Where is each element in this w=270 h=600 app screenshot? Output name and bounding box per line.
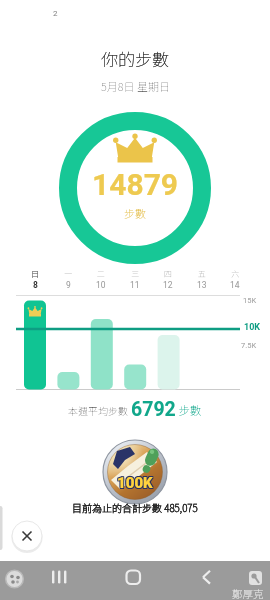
- staticText: 你的步數: [101, 46, 169, 71]
- staticText: 8: [33, 280, 38, 290]
- staticText: 步數: [124, 205, 146, 221]
- button[interactable]: [12, 521, 42, 551]
- staticText: 100K: [117, 473, 153, 491]
- staticText: 五: [198, 268, 206, 280]
- staticText: 11: [130, 280, 140, 290]
- staticText: 13: [197, 280, 207, 290]
- staticText: 日: [31, 268, 39, 280]
- staticText: 你的步數: [101, 46, 169, 71]
- staticText: 14: [230, 280, 240, 290]
- staticText: 5月8日 星期日: [101, 78, 170, 94]
- staticText: 鄭厚克: [232, 586, 264, 600]
- staticText: 10K: [244, 322, 261, 333]
- staticText: 100K: [116, 475, 152, 493]
- staticText: 9: [66, 280, 71, 290]
- staticText: 一: [64, 268, 72, 280]
- staticText: 目前為止的合計步數 485,075: [72, 500, 198, 514]
- staticText: 100K: [117, 475, 153, 493]
- staticText: 100K: [116, 473, 152, 491]
- staticText: 日: [31, 268, 39, 280]
- button[interactable]: [0, 560, 67, 600]
- staticText: 7.5K: [241, 341, 257, 350]
- button[interactable]: [67, 560, 134, 600]
- staticText: 步數: [176, 402, 202, 419]
- staticText: 100K: [117, 474, 153, 492]
- staticText: 100K: [118, 475, 154, 493]
- staticText: 本週平均步數: [68, 403, 131, 417]
- staticText: 三: [131, 268, 139, 280]
- staticText: 二: [97, 268, 105, 280]
- staticText: 四: [164, 268, 172, 280]
- staticText: 六: [231, 268, 239, 280]
- staticText: 目前為止的合計步數 485,075: [72, 500, 198, 514]
- staticText: 12: [163, 280, 173, 290]
- staticText: 日: [31, 268, 39, 280]
- staticText: 14879: [92, 167, 179, 202]
- staticText: 15K: [243, 296, 257, 305]
- button[interactable]: 本週平均步數: [0, 396, 270, 422]
- button[interactable]: [202, 560, 270, 600]
- button[interactable]: [134, 560, 202, 600]
- staticText: 2: [53, 9, 58, 18]
- staticText: 100K: [118, 473, 154, 491]
- button[interactable]: 100K: [0, 474, 270, 492]
- staticText: 你的步數: [101, 46, 169, 71]
- staticText: 100K: [116, 474, 152, 492]
- staticText: 6792: [131, 398, 176, 421]
- staticText: 10: [96, 280, 106, 290]
- staticText: 100K: [118, 474, 154, 492]
- staticText: 目前為止的合計步數 485,075: [72, 500, 198, 514]
